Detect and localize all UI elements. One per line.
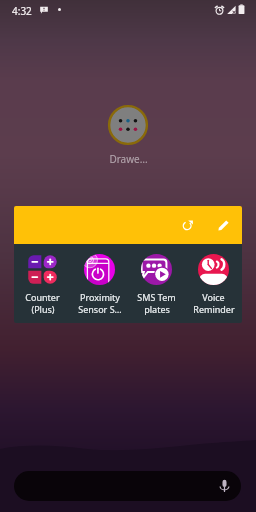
button[interactable]: Drawer — [107, 104, 149, 146]
button[interactable]: SMS Tem — [128, 244, 185, 315]
button[interactable]: Voice search — [14, 471, 241, 501]
staticText: Reminder — [193, 303, 235, 315]
other: Voice search — [219, 479, 230, 493]
staticText: 4:32 — [12, 4, 32, 18]
button[interactable]: Edit — [209, 211, 237, 239]
staticText: (Plus) — [31, 303, 55, 315]
button[interactable]: Voice — [185, 244, 242, 315]
staticText: SMS Tem — [137, 291, 176, 303]
button[interactable]: Counter — [14, 244, 71, 315]
staticText: Drawe… — [109, 152, 148, 166]
staticText: Counter — [25, 291, 60, 303]
staticText: Sensor S… — [78, 303, 122, 315]
button[interactable]: Refresh — [173, 211, 201, 239]
button[interactable]: Proximity — [71, 244, 128, 315]
staticText: plates — [144, 303, 170, 315]
staticText: Proximity — [80, 291, 120, 303]
staticText: Voice — [202, 291, 225, 303]
